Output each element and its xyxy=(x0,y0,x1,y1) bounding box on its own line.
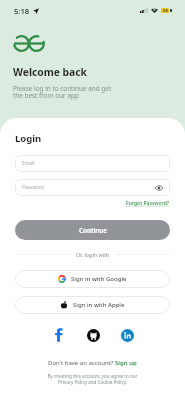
staticText: Please log in to continue and get the be… xyxy=(13,84,112,100)
staticText: Sign in with Apple xyxy=(73,301,125,309)
staticText: 5:18 xyxy=(14,6,30,16)
button[interactable]: Sign in with Apple xyxy=(15,296,170,314)
staticText: Email xyxy=(22,160,35,167)
button[interactable]: Sign in with Google xyxy=(15,270,170,288)
button[interactable]: Password xyxy=(15,179,170,196)
button[interactable]: Forgot Password? xyxy=(126,200,170,207)
button[interactable]: Continue xyxy=(15,220,170,240)
staticText: By creating this account, you agree to o… xyxy=(15,373,170,386)
staticText: Or, login with xyxy=(76,251,110,258)
staticText: Don't have an account? xyxy=(48,359,115,367)
button[interactable]: Email xyxy=(15,155,170,172)
staticText: Login xyxy=(15,132,42,145)
staticText: Sign in with Google xyxy=(71,275,127,283)
button[interactable]: Sign up xyxy=(115,359,137,367)
other: Show password xyxy=(155,185,163,191)
staticText: Continue xyxy=(79,226,107,235)
staticText: 58 xyxy=(163,8,168,13)
staticText: Welcome back xyxy=(13,65,87,79)
button[interactable]: Sign in with Facebook xyxy=(52,328,66,342)
staticText: Password xyxy=(22,184,45,191)
button[interactable]: Sign in with GitHub xyxy=(86,328,100,342)
button[interactable]: Sign in with LinkedIn xyxy=(120,328,134,342)
